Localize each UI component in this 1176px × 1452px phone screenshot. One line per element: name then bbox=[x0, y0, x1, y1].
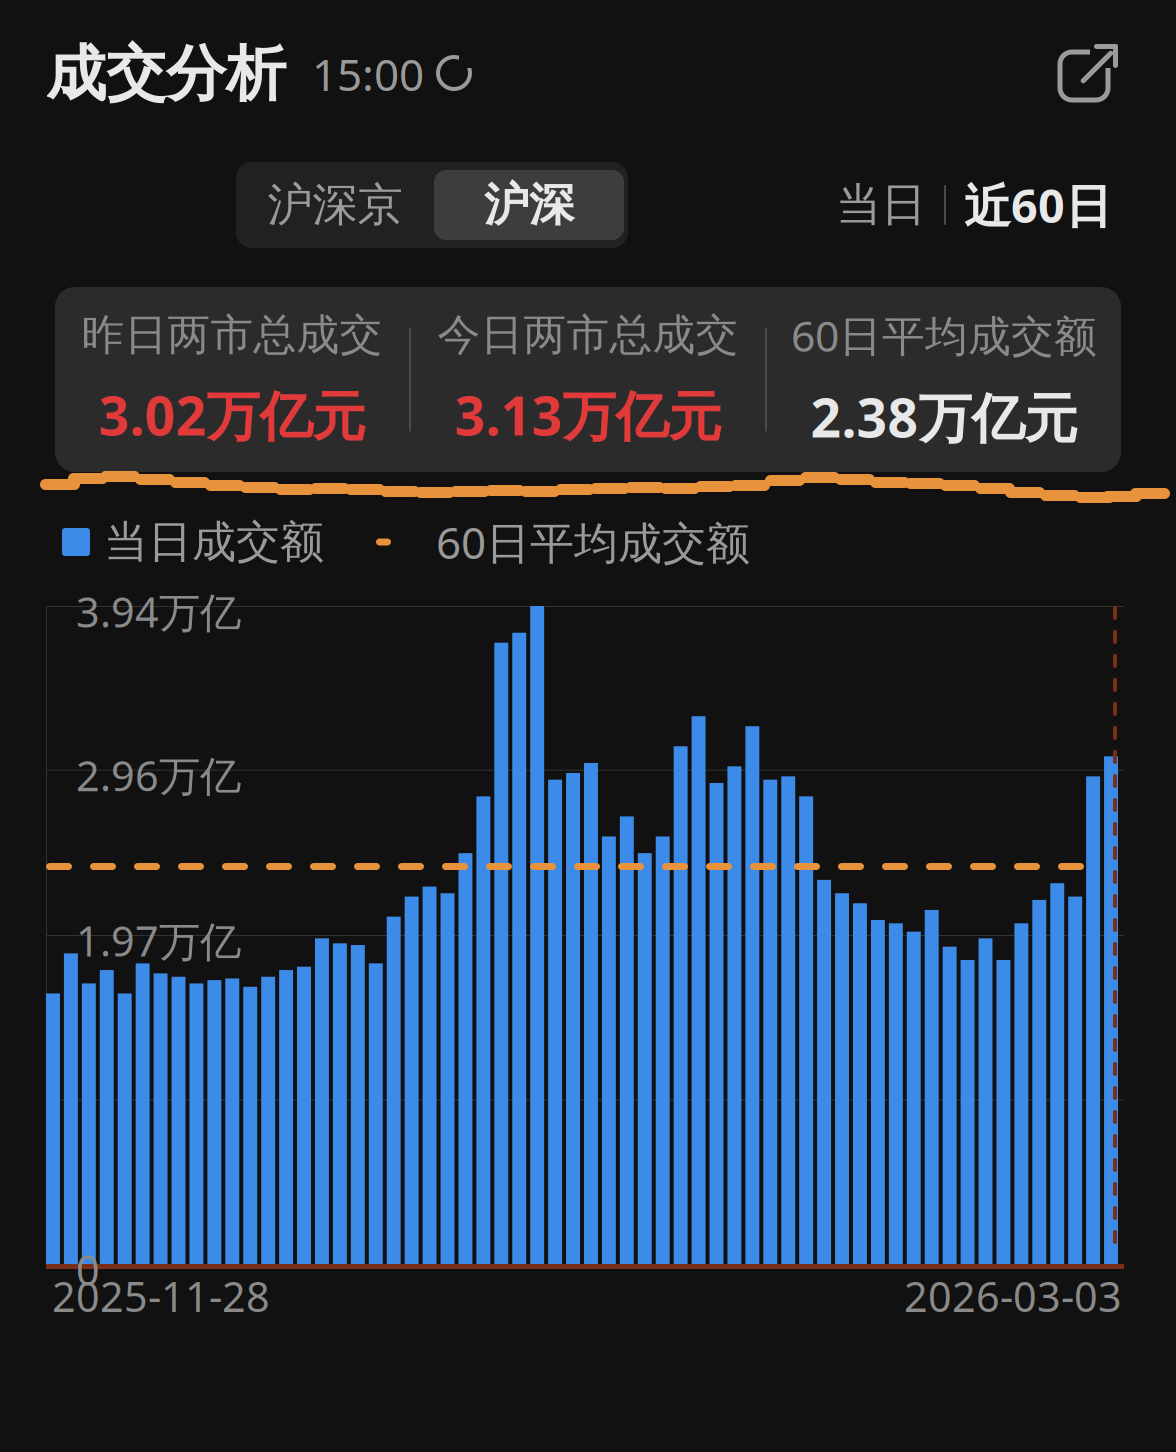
staticText: 当日成交额 bbox=[104, 515, 324, 569]
staticText: 成交分析 bbox=[46, 37, 286, 111]
staticText: 3.02万亿元 bbox=[98, 379, 365, 450]
button[interactable]: 当日 bbox=[818, 170, 944, 240]
staticText: 2.96万亿 bbox=[76, 748, 241, 803]
staticText: 60日平均成交额 bbox=[436, 513, 750, 571]
button[interactable]: 分享 bbox=[1052, 36, 1130, 112]
staticText: 当日 bbox=[836, 177, 926, 233]
staticText: 0 bbox=[76, 1242, 100, 1297]
staticText: 3.94万亿 bbox=[76, 584, 241, 639]
staticText: 2.38万亿元 bbox=[810, 381, 1077, 452]
staticText: 昨日两市总成交 bbox=[81, 309, 382, 361]
button[interactable]: 沪深京 bbox=[236, 166, 434, 244]
button[interactable]: 沪深 bbox=[434, 170, 624, 240]
button[interactable]: 近60日 bbox=[946, 170, 1130, 240]
staticText: 沪深京 bbox=[267, 177, 402, 233]
staticText: 1.97万亿 bbox=[76, 913, 241, 968]
staticText: 2025-11-28 bbox=[52, 1269, 270, 1323]
staticText: 2026-03-03 bbox=[904, 1269, 1122, 1323]
staticText: 3.13万亿元 bbox=[454, 379, 721, 450]
staticText: 15:00 bbox=[312, 45, 424, 103]
staticText: 沪深 bbox=[484, 177, 574, 233]
staticText: 今日两市总成交 bbox=[437, 309, 738, 361]
staticText: 60日平均成交额 bbox=[791, 307, 1097, 363]
staticText: 近60日 bbox=[964, 174, 1112, 236]
